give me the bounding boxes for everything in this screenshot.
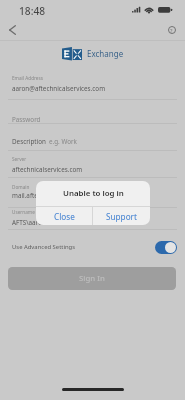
button[interactable]: Close	[36, 207, 92, 225]
staticText: mail.aftechnicalservices.com	[12, 191, 97, 200]
button[interactable]: Back	[2, 22, 22, 40]
button[interactable]: Use Advanced Settings	[0, 235, 185, 259]
staticText: AFTS\aaron	[12, 218, 46, 227]
staticText: aaron@aftechnicalservices.com	[12, 84, 106, 93]
staticText: ?	[170, 27, 173, 35]
staticText: aftechnicalservices.com	[12, 165, 83, 174]
staticText: Exchange	[87, 48, 124, 59]
staticText: Email Address	[12, 75, 43, 81]
staticText: Password	[12, 115, 41, 124]
staticText: Username	[12, 209, 35, 215]
staticText: Use Advanced Settings	[12, 243, 76, 251]
staticText: Support	[106, 211, 137, 222]
staticText: Domain	[12, 184, 30, 190]
staticText: Unable to log in	[63, 188, 124, 199]
button[interactable]: Sign In	[8, 267, 176, 290]
staticText: Description	[12, 137, 46, 146]
staticText: 18:48	[19, 4, 46, 18]
button[interactable]: Support	[93, 207, 150, 225]
staticText: e.g. Work	[49, 137, 77, 146]
button[interactable]: Help	[163, 22, 183, 40]
staticText: Server	[12, 156, 27, 162]
staticText: Close	[54, 211, 75, 222]
staticText: Sign In	[79, 273, 105, 284]
